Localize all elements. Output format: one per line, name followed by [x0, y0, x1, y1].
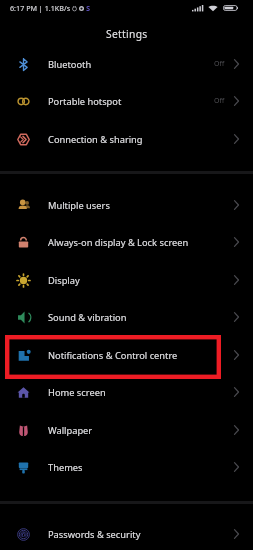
staticText: Off: [214, 96, 225, 106]
staticText: Portable hotspot: [48, 95, 122, 108]
button[interactable]: Sound & vibration: [0, 298, 253, 336]
button[interactable]: Notifications & Control centre: [0, 336, 253, 374]
staticText: Wallpaper: [48, 424, 93, 437]
staticText: S: [86, 3, 91, 13]
button[interactable]: Portable hotspot: [0, 82, 253, 120]
button[interactable]: Always-on display & Lock screen: [0, 223, 253, 261]
staticText: Passwords & security: [48, 528, 141, 541]
staticText: Always-on display & Lock screen: [48, 236, 189, 249]
staticText: Connection & sharing: [48, 133, 143, 146]
staticText: Notifications & Control centre: [48, 349, 178, 362]
button[interactable]: Multiple users: [0, 186, 253, 224]
staticText: Off: [214, 59, 225, 69]
staticText: Settings: [106, 27, 148, 41]
staticText: Multiple users: [48, 199, 110, 212]
staticText: Home screen: [48, 386, 106, 399]
button[interactable]: Home screen: [0, 373, 253, 411]
button[interactable]: Themes: [0, 448, 253, 486]
staticText: Sound & vibration: [48, 311, 127, 324]
button[interactable]: Passwords & security: [0, 515, 253, 550]
button[interactable]: Connection & sharing: [0, 120, 253, 158]
button[interactable]: Bluetooth: [0, 45, 253, 83]
staticText: 6:17 PM | 1.1KB/s: [10, 3, 71, 13]
staticText: Display: [48, 274, 80, 287]
button[interactable]: Display: [0, 261, 253, 299]
button[interactable]: Wallpaper: [0, 411, 253, 449]
staticText: Bluetooth: [48, 58, 92, 71]
staticText: Themes: [48, 461, 83, 474]
